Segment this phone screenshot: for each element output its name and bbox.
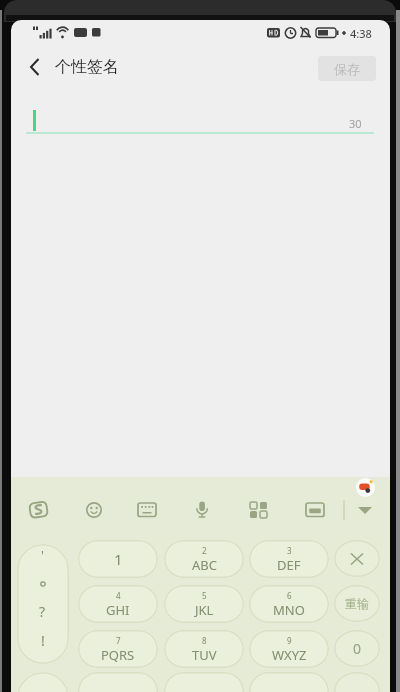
button[interactable]: 重输	[334, 585, 380, 622]
button[interactable]	[249, 672, 329, 692]
button[interactable]	[164, 672, 244, 692]
button[interactable]: 6	[249, 585, 329, 623]
staticText: 6	[287, 590, 292, 601]
staticText: 4:38	[350, 26, 372, 41]
staticText: PQRS	[101, 646, 135, 664]
button[interactable]: 2	[164, 540, 244, 578]
button[interactable]: '	[17, 544, 69, 664]
staticText: 30	[349, 116, 362, 131]
staticText: 5	[202, 590, 207, 601]
staticText: JKL	[195, 601, 214, 619]
staticText: 个性签名	[55, 57, 119, 77]
staticText: '	[41, 546, 44, 564]
staticText: 2	[202, 545, 207, 556]
staticText: WXYZ	[272, 646, 307, 664]
button[interactable]: 8	[164, 630, 244, 668]
button[interactable]: 0	[334, 630, 380, 667]
button[interactable]	[137, 499, 159, 521]
button[interactable]: 7	[78, 630, 158, 668]
staticText: 1	[114, 549, 123, 569]
button[interactable]	[28, 499, 50, 521]
button[interactable]	[191, 499, 213, 521]
staticText: 0	[353, 639, 362, 658]
button[interactable]	[305, 499, 327, 521]
staticText: !	[41, 631, 45, 650]
staticText: 8	[202, 635, 207, 646]
button[interactable]	[83, 499, 105, 521]
staticText: DEF	[277, 556, 301, 574]
staticText: 保存	[334, 61, 360, 77]
staticText: ABC	[192, 556, 217, 574]
button[interactable]: 3	[249, 540, 329, 578]
button[interactable]: 5	[164, 585, 244, 623]
staticText: TUV	[192, 646, 217, 664]
button[interactable]	[355, 499, 377, 521]
button[interactable]	[17, 672, 69, 692]
staticText: 4	[116, 590, 121, 601]
button[interactable]: 4	[78, 585, 158, 623]
button[interactable]: 保存	[318, 56, 376, 81]
button[interactable]	[249, 499, 271, 521]
staticText: ?	[39, 602, 46, 621]
staticText: MNO	[273, 601, 305, 619]
staticText: 3	[287, 545, 292, 556]
button[interactable]	[25, 56, 45, 78]
staticText: 9	[287, 635, 292, 646]
button[interactable]: 1	[78, 540, 158, 578]
staticText: 重输	[345, 596, 369, 611]
button[interactable]: 9	[249, 630, 329, 668]
button[interactable]	[334, 540, 380, 577]
staticText: 7	[116, 635, 121, 646]
staticText: GHI	[106, 601, 130, 619]
button[interactable]	[334, 672, 380, 692]
button[interactable]	[78, 672, 158, 692]
